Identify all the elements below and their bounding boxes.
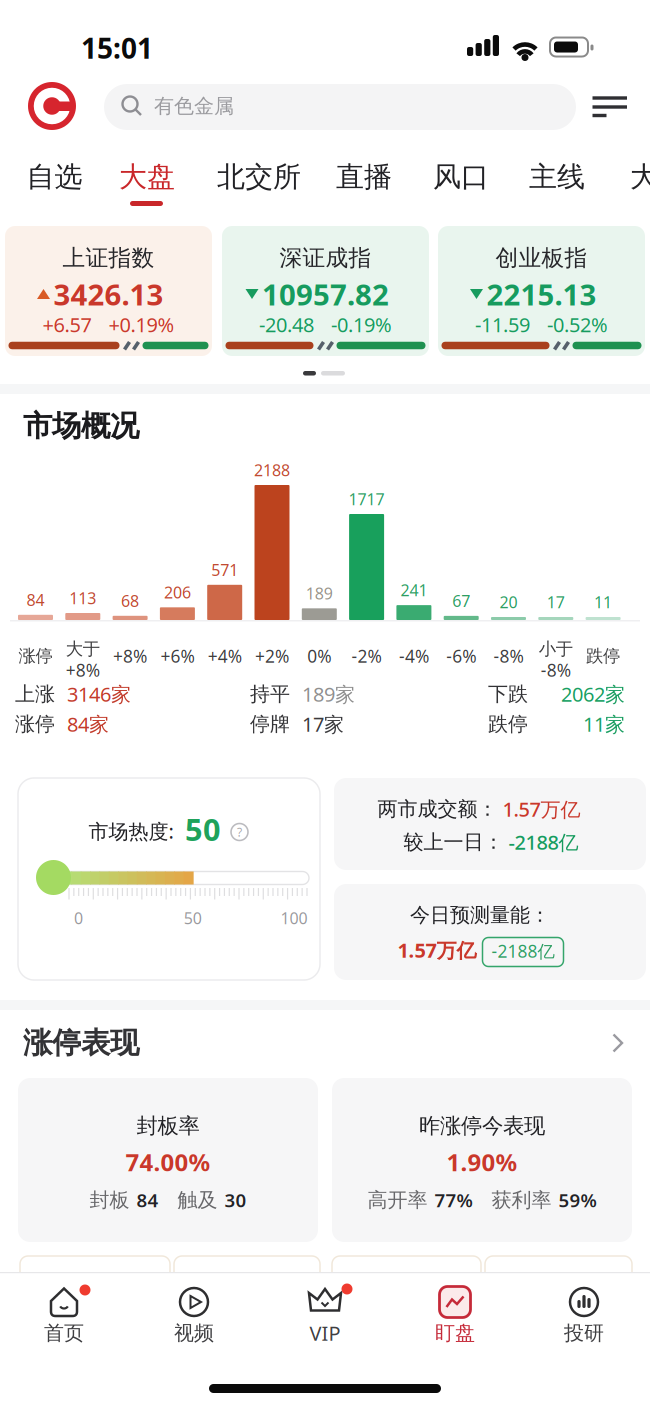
staticText: 上涨 xyxy=(15,682,55,706)
staticText: 1.90% xyxy=(446,1146,517,1178)
staticText: 跌停 xyxy=(488,712,528,736)
staticText: VIP xyxy=(309,1320,340,1346)
staticText: -20.48 xyxy=(259,311,314,338)
staticText: -2188亿 xyxy=(491,939,554,962)
staticText: 上证指数 xyxy=(62,244,154,272)
button[interactable]: 财联社 xyxy=(28,82,76,130)
staticText: 17家 xyxy=(302,711,344,737)
staticText: 20 xyxy=(499,591,517,613)
staticText: 0 xyxy=(74,907,83,929)
staticText: 2188 xyxy=(254,459,290,481)
staticText: 30 xyxy=(224,1188,246,1212)
staticText: 77% xyxy=(434,1188,472,1212)
staticText: 盯盘 xyxy=(435,1321,475,1345)
button[interactable]: 更多 xyxy=(590,96,629,118)
button[interactable]: 搜索 xyxy=(104,84,576,130)
staticText: 停牌 xyxy=(250,712,290,736)
button[interactable]: 深证成指 xyxy=(222,226,429,356)
staticText: 小于 xyxy=(539,638,573,660)
button[interactable]: 自选 xyxy=(20,154,88,200)
staticText: 67 xyxy=(452,590,470,611)
button[interactable]: 上证指数 xyxy=(5,226,212,356)
staticText: 获利率 xyxy=(491,1188,551,1212)
staticText: 市场热度: xyxy=(88,818,173,844)
staticText: ? xyxy=(237,824,242,840)
staticText: 59% xyxy=(558,1188,596,1212)
staticText: 100 xyxy=(280,907,307,929)
staticText: 189家 xyxy=(302,681,355,707)
button[interactable]: 视频 xyxy=(139,1273,249,1359)
button[interactable]: 创业板指 xyxy=(438,226,645,356)
button[interactable]: 主线 xyxy=(523,154,591,200)
staticText: 50 xyxy=(185,809,221,849)
staticText: 3426.13 xyxy=(53,274,163,313)
staticText: +2% xyxy=(255,644,289,667)
staticText: +8% xyxy=(66,658,100,681)
staticText: 11家 xyxy=(583,711,625,737)
staticText: 74.00% xyxy=(125,1146,210,1178)
staticText: 涨停 xyxy=(15,712,55,736)
staticText: 571 xyxy=(211,559,238,580)
staticText: 0% xyxy=(307,644,331,667)
staticText: 1.57万亿 xyxy=(397,937,476,963)
staticText: 11 xyxy=(594,591,612,613)
button[interactable]: 直播 xyxy=(330,154,398,200)
button[interactable]: 更多涨停表现 xyxy=(611,1032,624,1053)
staticText: 大于 xyxy=(66,638,100,660)
staticText: 下跌 xyxy=(488,682,528,706)
button[interactable]: 投研 xyxy=(529,1273,639,1359)
staticText: 北交所 xyxy=(217,160,301,194)
staticText: 高开率 xyxy=(367,1188,427,1212)
staticText: 今日预测量能： xyxy=(410,903,550,927)
staticText: 自选 xyxy=(26,160,82,194)
staticText: 有色金属 xyxy=(154,94,234,118)
button[interactable]: 首页 xyxy=(9,1273,119,1359)
staticText: +0.19% xyxy=(108,311,174,338)
button[interactable]: 北交所 xyxy=(211,154,307,200)
staticText: 两市成交额： xyxy=(377,797,497,821)
staticText: 68 xyxy=(121,590,139,611)
staticText: 2062家 xyxy=(561,681,625,707)
staticText: 84 xyxy=(26,589,44,610)
button[interactable]: 风口 xyxy=(427,154,495,200)
button[interactable]: 盯盘 xyxy=(400,1273,510,1359)
button[interactable]: 市场热度说明 xyxy=(227,820,251,844)
staticText: -8% xyxy=(541,658,571,681)
button[interactable]: 封板率 xyxy=(18,1078,318,1242)
staticText: 2215.13 xyxy=(486,274,596,313)
staticText: -0.19% xyxy=(331,311,392,338)
staticText: 市场概况 xyxy=(23,408,139,444)
staticText: 241 xyxy=(400,579,427,601)
staticText: 1.57万亿 xyxy=(502,796,580,822)
button[interactable]: 大盘 xyxy=(113,154,181,200)
staticText: +4% xyxy=(208,644,242,667)
staticText: 风口 xyxy=(433,160,489,194)
staticText: 封板 xyxy=(89,1188,129,1212)
staticText: 17 xyxy=(547,591,565,613)
staticText: 50 xyxy=(184,907,202,929)
button[interactable]: 昨涨停今表现 xyxy=(332,1078,632,1242)
staticText: 84 xyxy=(136,1188,158,1212)
staticText: 首页 xyxy=(44,1321,84,1345)
staticText: 持平 xyxy=(250,682,290,706)
button[interactable]: 大 xyxy=(624,154,650,200)
staticText: 较上一日： xyxy=(403,830,503,854)
staticText: 深证成指 xyxy=(279,244,371,272)
staticText: -2188亿 xyxy=(508,829,578,855)
staticText: 1717 xyxy=(349,488,385,510)
staticText: 大 xyxy=(630,160,650,194)
staticText: 跌停 xyxy=(586,645,620,667)
staticText: -8% xyxy=(493,644,523,667)
staticText: -2% xyxy=(352,644,382,667)
staticText: 昨涨停今表现 xyxy=(419,1113,545,1139)
staticText: 大盘 xyxy=(119,160,175,194)
staticText: 涨停表现 xyxy=(23,1025,139,1061)
staticText: 封板率 xyxy=(136,1113,199,1139)
staticText: -0.52% xyxy=(547,311,608,338)
staticText: 206 xyxy=(164,582,191,603)
button[interactable]: VIP xyxy=(270,1273,380,1359)
staticText: 主线 xyxy=(529,160,585,194)
staticText: 3146家 xyxy=(67,681,131,707)
staticText: 投研 xyxy=(564,1321,604,1345)
staticText: +6% xyxy=(160,644,194,667)
